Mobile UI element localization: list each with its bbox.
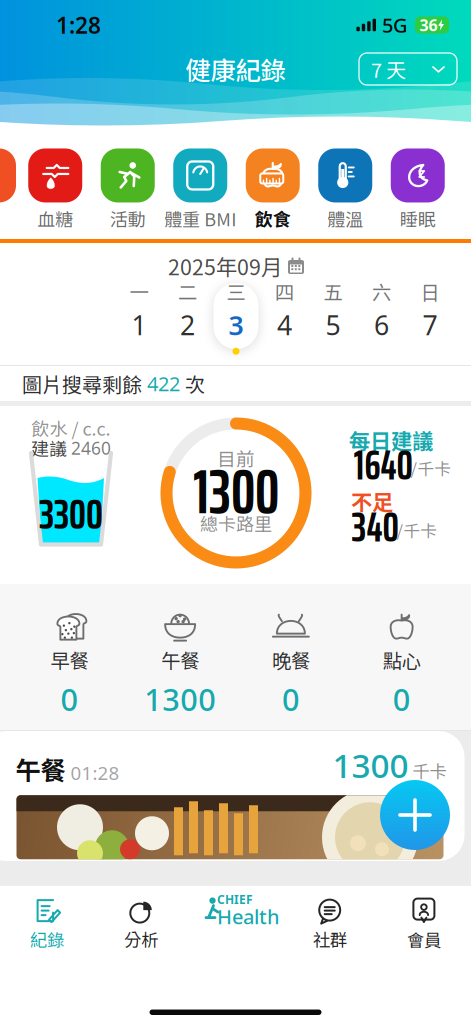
staticText: 2025年09月: [168, 251, 282, 281]
staticText: 36: [419, 14, 437, 36]
staticText: 二: [178, 277, 197, 305]
staticText: 5: [325, 307, 340, 343]
button[interactable]: 會員: [377, 897, 471, 952]
staticText: 睡眠: [400, 205, 436, 232]
staticText: 午餐: [15, 751, 65, 787]
button[interactable]: 點心: [346, 609, 457, 719]
button[interactable]: 活動: [91, 148, 164, 232]
staticText: 分析: [124, 927, 158, 952]
staticText: 1640: [353, 432, 412, 498]
button[interactable]: 四: [262, 281, 307, 351]
staticText: 飲食: [255, 205, 291, 232]
staticText: 飲水 / c.c.: [31, 415, 110, 441]
staticText: 0: [282, 679, 300, 719]
staticText: 1300: [193, 444, 279, 540]
staticText: 千卡: [408, 758, 446, 783]
staticText: 日: [420, 277, 439, 305]
staticText: 建議: [31, 435, 67, 461]
button[interactable]: 晚餐: [235, 609, 346, 719]
staticText: CHIEF: [217, 891, 253, 907]
button[interactable]: 午餐: [125, 609, 236, 719]
staticText: 7: [422, 307, 437, 343]
staticText: 340: [351, 494, 398, 560]
button[interactable]: 社群: [283, 897, 377, 952]
staticText: 紀錄: [30, 927, 64, 952]
staticText: 每日建議: [349, 425, 433, 455]
button[interactable]: 六: [359, 281, 404, 351]
staticText: 五: [323, 277, 342, 305]
staticText: 422: [142, 370, 185, 397]
button[interactable]: 一: [116, 281, 161, 351]
staticText: 7 天: [371, 54, 406, 83]
staticText: 體重 BMI: [164, 205, 236, 232]
button[interactable]: 二: [165, 281, 210, 351]
staticText: 一: [129, 277, 148, 305]
button[interactable]: 血糖: [19, 148, 91, 232]
staticText: 1: [131, 307, 146, 343]
staticText: Health: [217, 903, 280, 930]
staticText: 6: [374, 307, 389, 343]
staticText: 圖片搜尋剩餘: [22, 369, 142, 398]
staticText: 3: [228, 307, 243, 343]
staticText: 目前: [217, 444, 255, 471]
button[interactable]: 紀錄: [0, 897, 94, 952]
button[interactable]: 體重 BMI: [164, 148, 236, 232]
staticText: 5G: [382, 12, 408, 38]
button[interactable]: 三: [213, 281, 258, 351]
staticText: 點心: [383, 646, 421, 674]
staticText: 不足: [351, 486, 393, 516]
button[interactable]: 睡眠: [381, 148, 454, 232]
staticText: 晚餐: [272, 646, 310, 674]
staticText: 午餐: [161, 646, 199, 674]
staticText: 社群: [313, 927, 347, 952]
button[interactable]: 日: [407, 281, 452, 351]
staticText: 四: [275, 277, 294, 305]
staticText: 1:28: [56, 10, 101, 40]
button[interactable]: 分析: [94, 897, 188, 952]
staticText: /千卡: [410, 456, 451, 480]
staticText: 早餐: [50, 646, 88, 674]
button[interactable]: 五: [310, 281, 355, 351]
staticText: 4: [277, 307, 292, 343]
staticText: 01:28: [65, 760, 119, 785]
staticText: 六: [372, 277, 391, 305]
staticText: 2460: [71, 436, 111, 459]
staticText: 0: [393, 679, 411, 719]
staticText: 體溫: [327, 205, 363, 232]
button[interactable]: 7 天: [359, 53, 457, 85]
staticText: 0: [60, 679, 78, 719]
button[interactable]: 早餐: [14, 609, 125, 719]
staticText: 血糖: [37, 205, 73, 232]
staticText: 總卡路里: [200, 510, 272, 536]
staticText: 2: [180, 307, 195, 343]
staticText: 活動: [110, 205, 146, 232]
staticText: 1300: [332, 743, 408, 787]
staticText: 1300: [144, 679, 216, 719]
staticText: 會員: [407, 927, 441, 952]
staticText: 健康紀錄: [185, 51, 285, 87]
staticText: 三: [226, 277, 245, 305]
staticText: 3300: [39, 480, 103, 548]
button[interactable]: Add record: [380, 780, 450, 850]
button[interactable]: 體溫: [309, 148, 381, 232]
button[interactable]: Chief Health: [188, 896, 283, 953]
button[interactable]: 飲食: [236, 148, 309, 232]
staticText: 次: [185, 369, 205, 398]
staticText: /千卡: [396, 518, 437, 542]
